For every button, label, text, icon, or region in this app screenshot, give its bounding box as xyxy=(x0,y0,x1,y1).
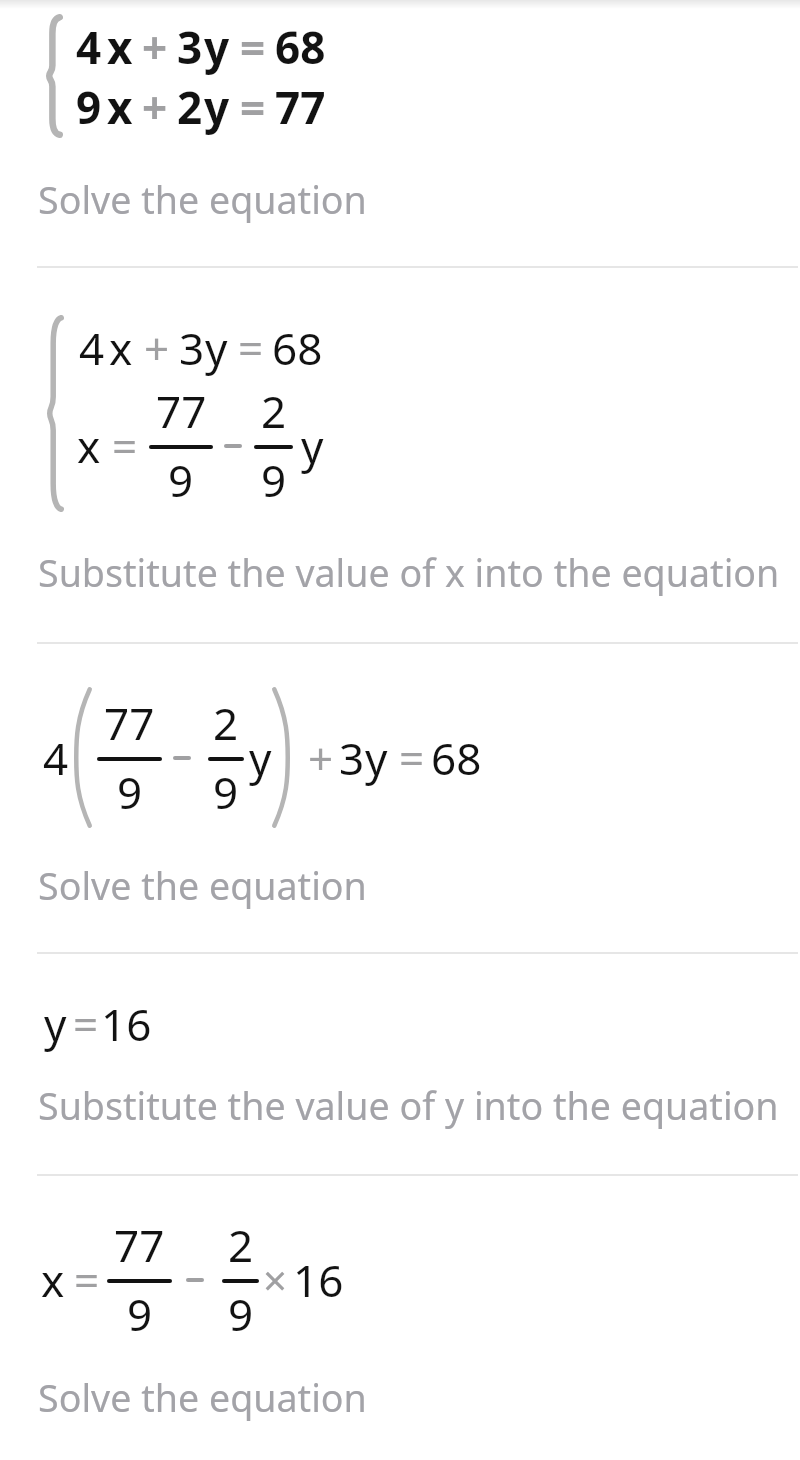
staticText: 4 xyxy=(76,17,102,77)
button[interactable]: Step 3: expand and solve xyxy=(0,644,800,952)
staticText: Solve the equation xyxy=(38,1372,367,1423)
button[interactable]: Step 5: solve for x xyxy=(0,1176,800,1460)
staticText: = xyxy=(73,994,99,1054)
staticText: 9 xyxy=(213,762,239,822)
staticText: 68 xyxy=(272,318,323,378)
staticText: = xyxy=(112,416,138,476)
staticText: x xyxy=(77,416,101,476)
staticText: 3 xyxy=(177,17,203,77)
staticText: = xyxy=(74,1250,100,1310)
staticText: 77 xyxy=(104,693,155,753)
staticText: + xyxy=(142,77,168,137)
staticText: y xyxy=(301,416,324,476)
staticText: y xyxy=(365,728,388,788)
staticText: x xyxy=(107,77,133,137)
button[interactable]: Step 1: system of equations xyxy=(0,0,800,266)
button[interactable]: Step 2: substitute x xyxy=(0,268,800,642)
staticText: 77 xyxy=(275,77,326,137)
staticText: = xyxy=(240,17,266,77)
staticText: Solve the equation xyxy=(38,860,367,911)
staticText: = xyxy=(399,728,425,788)
staticText: + xyxy=(142,17,168,77)
staticText: 77 xyxy=(114,1215,165,1275)
staticText: 68 xyxy=(275,17,326,77)
staticText: 2 xyxy=(228,1215,254,1275)
staticText: 9 xyxy=(261,450,287,510)
staticText: + xyxy=(144,318,170,378)
staticText: = xyxy=(238,318,264,378)
staticText: 9 xyxy=(117,762,143,822)
staticText: y xyxy=(44,994,67,1054)
staticText: y xyxy=(205,318,228,378)
staticText: 77 xyxy=(156,381,207,441)
staticText: 4 xyxy=(79,318,105,378)
staticText: 9 xyxy=(168,450,194,510)
staticText: x xyxy=(109,318,133,378)
staticText: 9 xyxy=(76,77,102,137)
staticText: 2 xyxy=(261,381,287,441)
staticText: 3 xyxy=(339,728,365,788)
staticText: 3 xyxy=(179,318,205,378)
staticText: Substitute the value of x into the equat… xyxy=(38,547,780,598)
staticText: Substitute the value of y into the equat… xyxy=(38,1080,779,1131)
staticText: x xyxy=(107,17,133,77)
staticText: y xyxy=(204,77,230,137)
staticText: + xyxy=(308,728,334,788)
staticText: 16 xyxy=(101,994,152,1054)
staticText: 4 xyxy=(43,728,69,788)
staticText: 2 xyxy=(213,693,239,753)
staticText: Solve the equation xyxy=(38,174,367,225)
staticText: 68 xyxy=(431,728,482,788)
staticText: x xyxy=(41,1250,65,1310)
staticText: 16 xyxy=(293,1250,344,1310)
staticText: × xyxy=(263,1251,288,1308)
staticText: 9 xyxy=(228,1284,254,1344)
staticText: = xyxy=(240,77,266,137)
staticText: y xyxy=(249,728,272,788)
staticText: 2 xyxy=(177,77,203,137)
staticText: 9 xyxy=(127,1284,153,1344)
staticText: y xyxy=(204,17,230,77)
button[interactable]: Step 4: y = 16 xyxy=(0,954,800,1174)
